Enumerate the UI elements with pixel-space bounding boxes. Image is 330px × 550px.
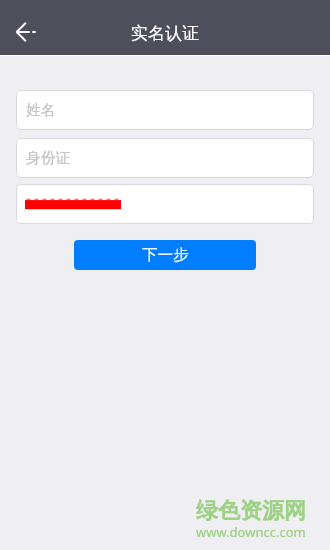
staticText: 姓名 <box>26 101 56 120</box>
staticText: 绿色资源网 <box>196 497 306 525</box>
staticText: 下一步 <box>142 245 189 265</box>
button[interactable]: 下一步 <box>74 240 256 270</box>
button[interactable]: Back <box>5 11 47 53</box>
staticText: 实名认证 <box>131 23 199 44</box>
button[interactable]: 身份证 <box>16 138 314 178</box>
staticText: www.downcc.com <box>196 523 306 541</box>
button[interactable] <box>16 184 314 224</box>
staticText: 身份证 <box>26 149 71 168</box>
button[interactable]: 姓名 <box>16 90 314 130</box>
